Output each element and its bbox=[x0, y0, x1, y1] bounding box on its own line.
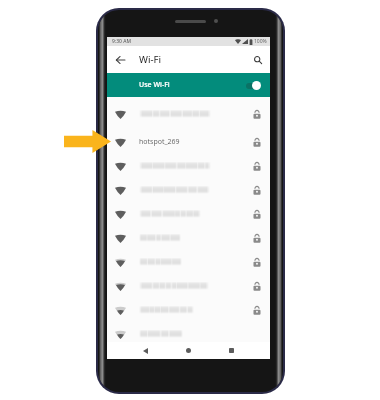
button[interactable]: hotspot_269 bbox=[107, 130, 270, 154]
button[interactable] bbox=[107, 226, 270, 250]
staticText: Use Wi-Fi bbox=[139, 80, 170, 90]
button[interactable]: Back bbox=[137, 342, 154, 359]
staticText: 9:30 AM bbox=[112, 38, 132, 45]
button[interactable]: Home bbox=[180, 342, 197, 359]
button[interactable] bbox=[107, 98, 270, 130]
button[interactable] bbox=[107, 178, 270, 202]
button[interactable]: Use Wi-Fi bbox=[107, 73, 270, 97]
button[interactable] bbox=[107, 274, 270, 298]
button[interactable] bbox=[107, 202, 270, 226]
staticText: hotspot_269 bbox=[139, 137, 180, 147]
button[interactable] bbox=[107, 154, 270, 178]
button[interactable]: Search bbox=[246, 46, 270, 73]
button[interactable] bbox=[107, 298, 270, 322]
staticText: 100% bbox=[254, 38, 267, 45]
other: Pointer arrow bbox=[64, 130, 111, 153]
button[interactable]: Navigate up bbox=[107, 46, 133, 73]
button[interactable] bbox=[107, 322, 270, 346]
button[interactable] bbox=[107, 250, 270, 274]
button[interactable]: Recent apps bbox=[223, 342, 240, 359]
staticText: Wi-Fi bbox=[139, 53, 162, 66]
